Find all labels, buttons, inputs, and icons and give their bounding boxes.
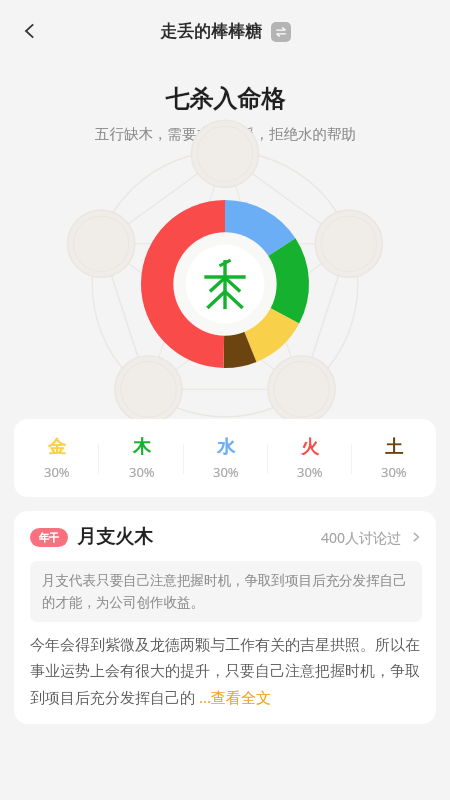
staticText: 30% xyxy=(381,463,407,481)
staticText: 30% xyxy=(297,463,323,481)
button[interactable]: 今年会得到紫微及龙德两颗与工作有关的吉星拱照。所以在事业运势上会有很大的提升，只… xyxy=(30,636,422,708)
staticText: 400人讨论过 xyxy=(321,528,402,547)
staticText: 火 xyxy=(301,436,319,459)
button[interactable]: Switch profile xyxy=(271,22,291,42)
staticText: 木 xyxy=(133,436,151,459)
staticText: 走丢的棒棒糖 xyxy=(160,21,262,42)
staticText: 五行缺木，需要木的支援，拒绝水的帮助 xyxy=(95,125,356,143)
staticText: 30% xyxy=(213,463,239,481)
staticText: 月支代表只要自己注意把握时机，争取到项目后充分发挥自己的才能，为公司创作收益。 xyxy=(42,572,410,611)
staticText: 30% xyxy=(44,463,70,481)
staticText: 水 xyxy=(217,436,235,459)
staticText: 土 xyxy=(385,436,403,459)
staticText: 七杀入命格 xyxy=(165,84,285,114)
button[interactable]: 年干 xyxy=(30,525,422,549)
staticText: 金 xyxy=(48,436,66,459)
staticText: 月支火木 xyxy=(77,525,153,549)
button[interactable]: 金 xyxy=(14,419,436,497)
staticText: 年干 xyxy=(39,531,59,544)
button[interactable]: Back xyxy=(8,9,52,53)
staticText: 30% xyxy=(129,463,155,481)
